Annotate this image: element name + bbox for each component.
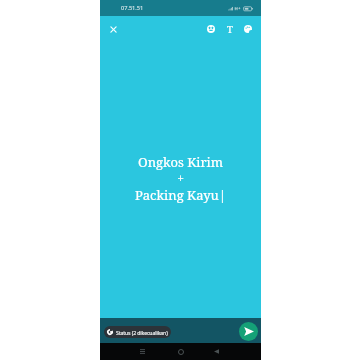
button[interactable]: Recent apps xyxy=(135,344,150,359)
button[interactable]: Draw xyxy=(239,20,257,38)
staticText: 07.51.51 xyxy=(121,4,144,12)
button[interactable]: Close xyxy=(104,20,122,38)
button[interactable]: Status (2 dikecualikan) xyxy=(104,326,171,338)
staticText: Status (2 dikecualikan) xyxy=(116,329,168,336)
button[interactable]: Home xyxy=(173,344,188,359)
staticText: T xyxy=(227,23,233,36)
button[interactable]: Back xyxy=(209,344,224,359)
button[interactable]: Emoji xyxy=(202,20,220,38)
staticText: + xyxy=(100,170,261,186)
staticText: Ongkos Kirim xyxy=(100,153,261,171)
button[interactable]: Add text xyxy=(221,20,239,38)
button[interactable]: Send xyxy=(239,322,258,341)
staticText: Packing Kayu| xyxy=(100,186,261,204)
